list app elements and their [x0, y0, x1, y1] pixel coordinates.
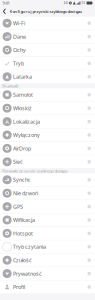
staticText: Hotspot [13, 230, 33, 237]
button[interactable]: Sieć [0, 155, 95, 169]
staticText: Wi-Fi [13, 20, 25, 27]
staticText: Dane [13, 33, 26, 40]
button[interactable]: GPS [0, 200, 95, 213]
staticText: Czułość [13, 257, 32, 264]
staticText: 9:41 [2, 0, 9, 6]
staticText: Konfiguruj przyciski szybkiego dostępu [9, 9, 82, 14]
staticText: Bluetooth [2, 83, 18, 89]
staticText: 92 [81, 1, 85, 5]
button[interactable]: Synchr. [0, 173, 95, 187]
button[interactable]: Wyłączony [0, 128, 95, 142]
staticText: Włoskiż [13, 105, 32, 112]
button[interactable]: Cichy [0, 43, 95, 57]
staticText: 4G [64, 1, 68, 5]
staticText: Cichy [13, 46, 26, 53]
button[interactable]: Hotspot [0, 227, 95, 240]
staticText: Lokalizacja [13, 118, 40, 125]
button[interactable]: Wifikacja [0, 213, 95, 227]
staticText: Samolot [13, 91, 33, 98]
button[interactable]: Profil [0, 280, 95, 294]
staticText: Latarka [13, 73, 32, 80]
button[interactable]: Tryb [0, 57, 95, 70]
button[interactable]: Wi-Fi [0, 17, 95, 30]
staticText: AirDrop [13, 145, 31, 152]
staticText: Synchr. [13, 176, 30, 183]
staticText: Nie dzwoń [13, 190, 38, 197]
button[interactable]: Samolot [0, 88, 95, 102]
staticText: Tryb czytania [13, 243, 46, 250]
button[interactable]: AirDrop [0, 142, 95, 155]
button[interactable]: Prywatność [0, 267, 95, 280]
button[interactable]: Dane [0, 30, 95, 43]
button[interactable]: Nie dzwoń [0, 187, 95, 200]
button[interactable]: Lokalizacja [0, 115, 95, 128]
staticText: GPS [13, 203, 23, 210]
staticText: Tryb [13, 60, 24, 67]
staticText: Profil [13, 283, 25, 290]
button[interactable]: Latarka [0, 70, 95, 84]
staticText: Sieć [13, 158, 23, 165]
staticText: Prywatność [13, 270, 42, 277]
staticText: Pozostałe przyciski szybkiego dostępu [2, 168, 67, 174]
button[interactable]: Tryb czytania [0, 240, 95, 254]
button[interactable]: Czułość [0, 254, 95, 267]
staticText: Wyłączony [13, 131, 40, 138]
staticText: Wifikacja [13, 216, 35, 223]
button[interactable]: Włoskiż [0, 102, 95, 115]
button[interactable]: Wstecz [1, 6, 8, 16]
